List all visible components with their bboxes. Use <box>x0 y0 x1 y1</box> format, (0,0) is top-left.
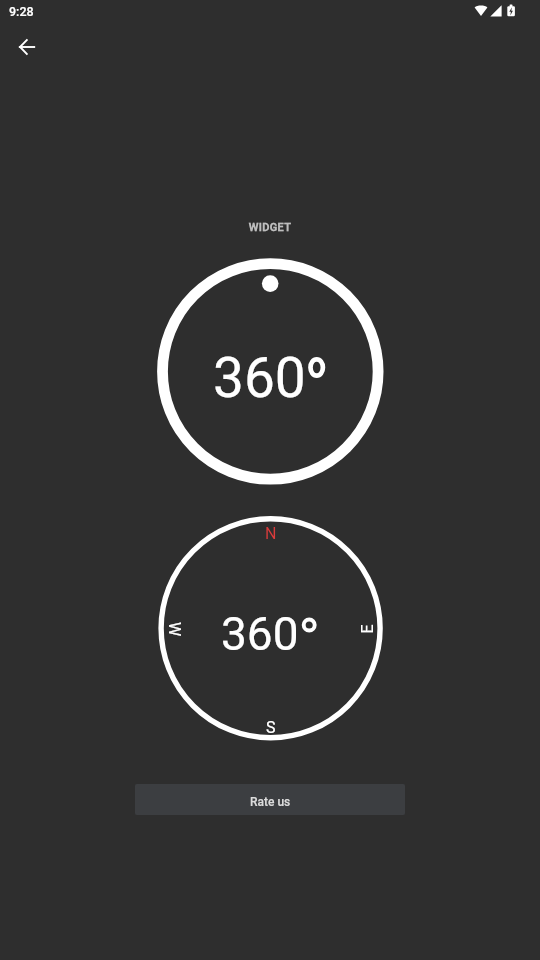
staticText: Rate us <box>250 795 291 809</box>
staticText: S <box>266 718 276 737</box>
staticText: 9:28 <box>9 4 34 19</box>
button[interactable]: Back <box>4 24 50 70</box>
button[interactable]: Compass dial widget preview <box>158 516 384 742</box>
staticText: N <box>265 524 277 543</box>
staticText: 360 <box>221 607 299 661</box>
button[interactable]: Rate us <box>135 784 405 815</box>
staticText: W <box>165 622 184 637</box>
staticText: WIDGET <box>0 221 540 234</box>
staticText: 360 <box>213 346 306 410</box>
staticText: E <box>357 623 376 633</box>
button[interactable]: Compass widget preview <box>156 257 384 485</box>
